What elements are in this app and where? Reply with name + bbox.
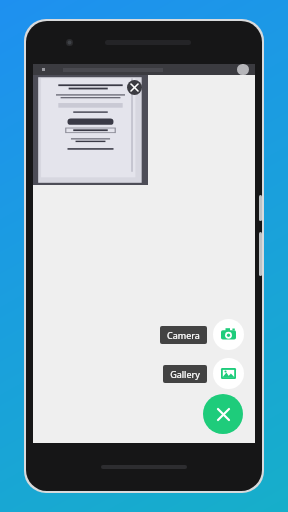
button[interactable]: Remove photo [127, 80, 142, 95]
button[interactable]: Profile [237, 64, 249, 75]
staticText: Camera [167, 329, 200, 341]
button[interactable]: Close menu [203, 394, 243, 434]
staticText: Gallery [170, 368, 200, 380]
button[interactable]: Gallery [213, 358, 244, 389]
button[interactable]: Gallery [163, 365, 207, 383]
button[interactable]: Camera [160, 326, 207, 344]
button[interactable]: Camera [213, 319, 244, 350]
